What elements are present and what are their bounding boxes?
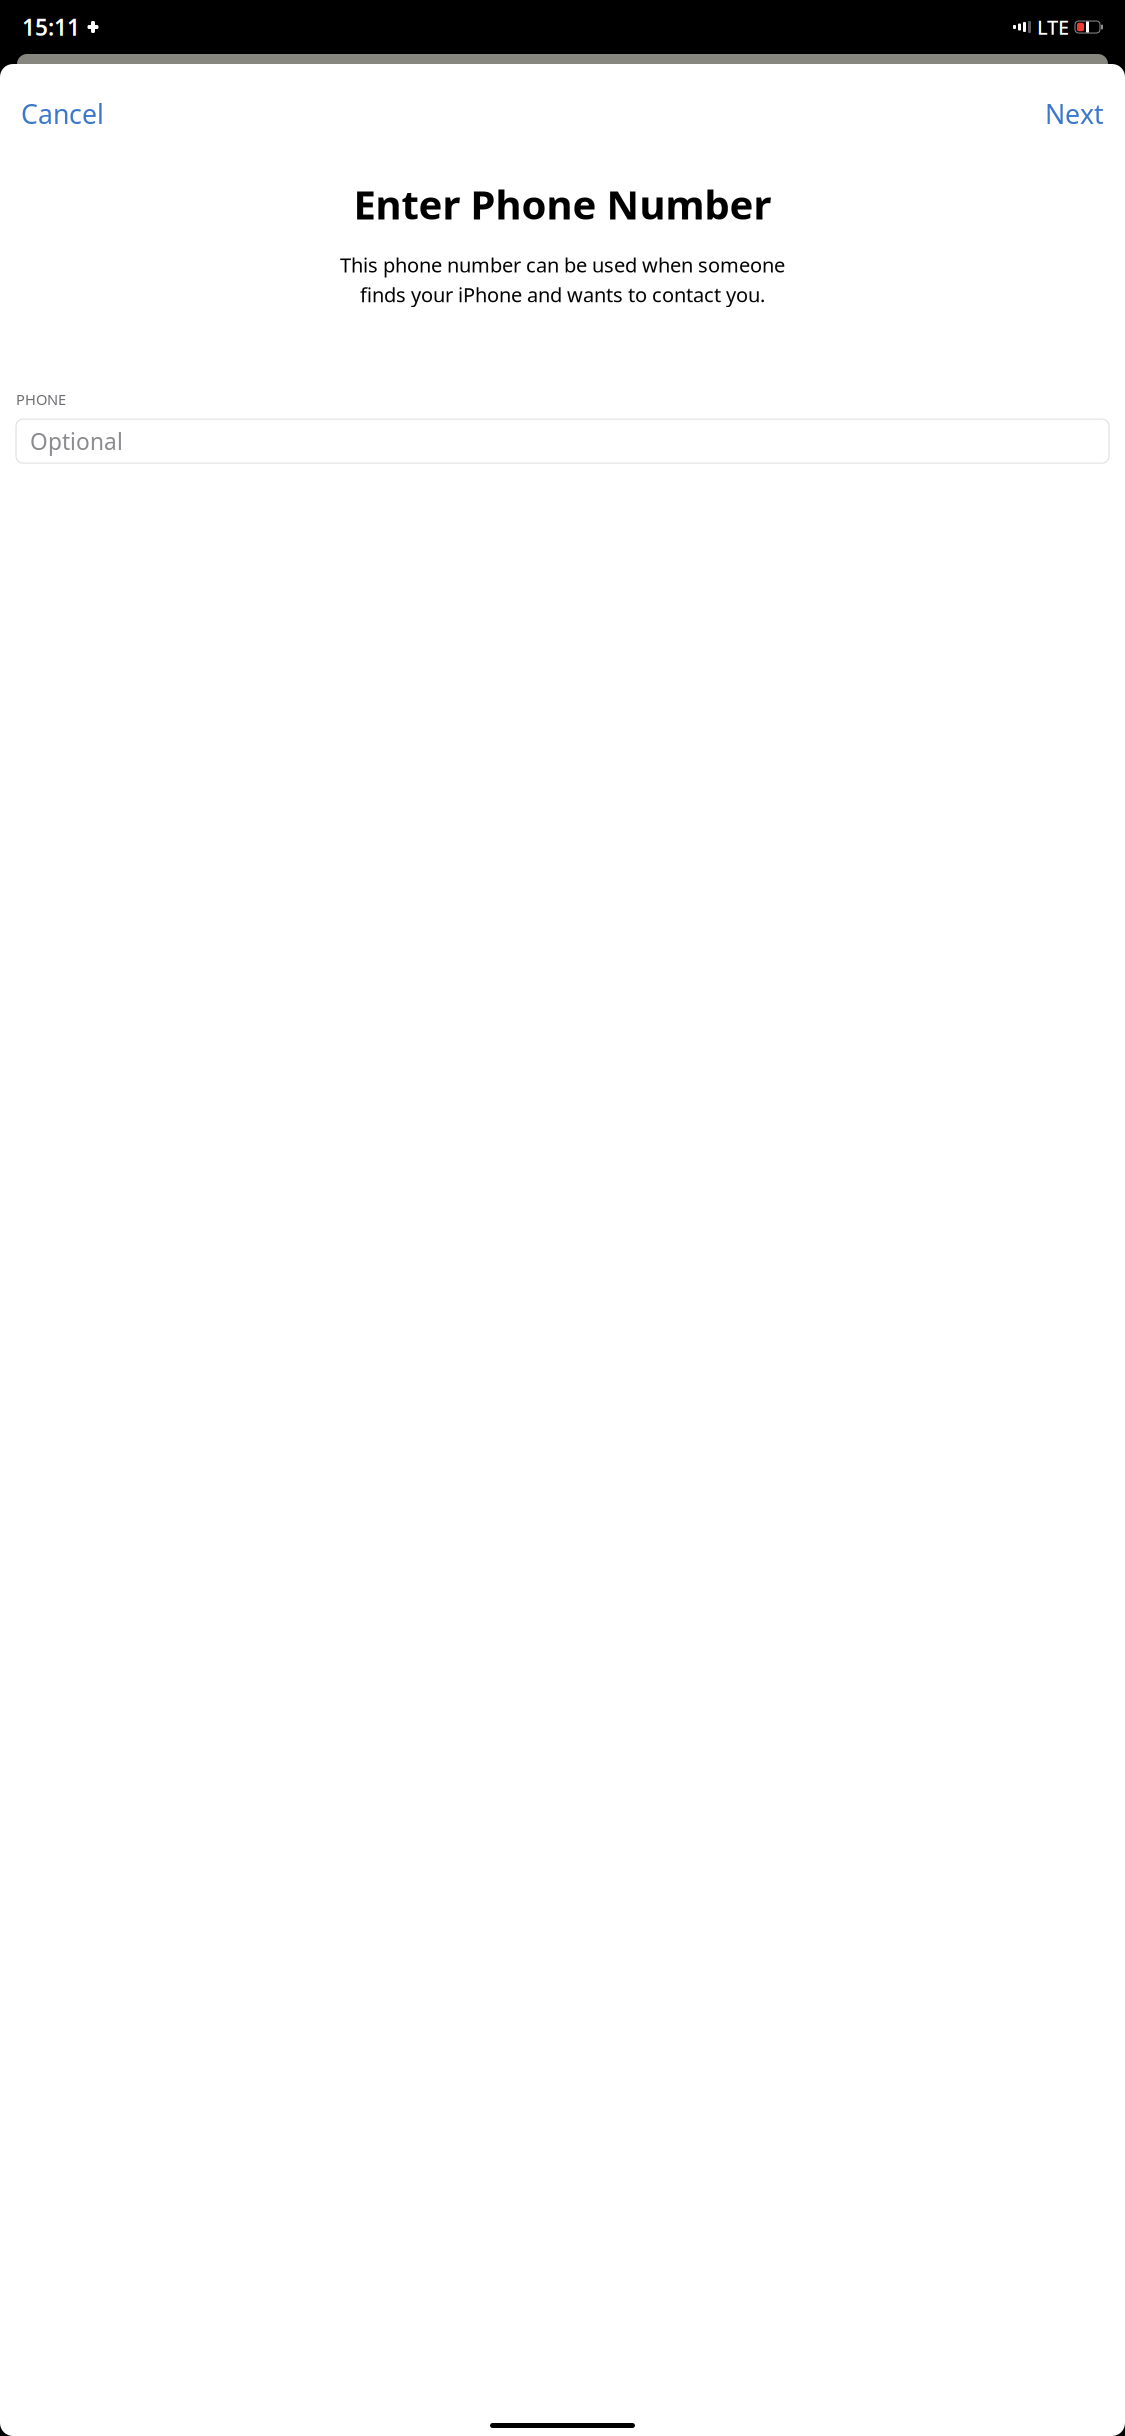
staticText: Cancel <box>21 96 104 131</box>
staticText: 15:11 <box>22 12 80 42</box>
staticText: Next <box>1045 96 1104 131</box>
staticText: finds your iPhone and wants to contact y… <box>360 281 765 308</box>
button[interactable]: Optional <box>16 419 1109 463</box>
button[interactable]: Cancel <box>5 86 120 141</box>
staticText: Optional <box>30 426 123 456</box>
staticText: Enter Phone Number <box>353 177 771 230</box>
button[interactable]: Next <box>1029 86 1120 141</box>
staticText: LTE <box>1037 14 1069 40</box>
staticText: This phone number can be used when someo… <box>340 251 785 278</box>
staticText: PHONE <box>16 390 66 409</box>
